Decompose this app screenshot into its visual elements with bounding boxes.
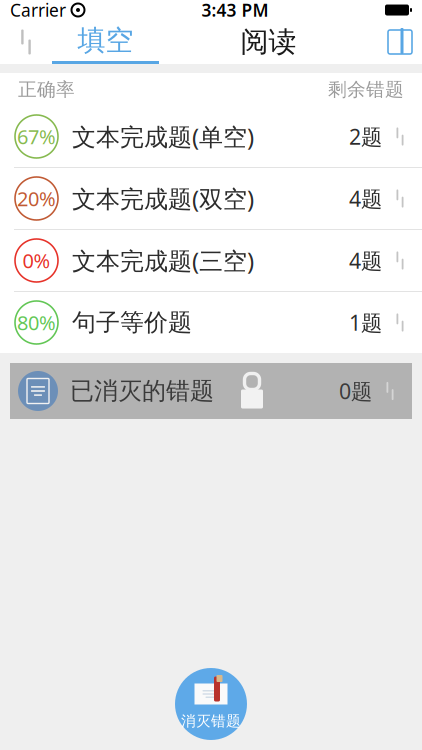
staticText: 文本完成题(双空) bbox=[72, 183, 254, 214]
button[interactable]: 20% bbox=[0, 168, 422, 229]
button[interactable]: Compose bbox=[378, 20, 422, 64]
staticText: Carrier bbox=[10, 0, 66, 21]
staticText: 1题 bbox=[349, 308, 382, 337]
staticText: 20% bbox=[17, 185, 56, 212]
button[interactable]: 已消灭的错题 bbox=[10, 363, 412, 419]
staticText: 4题 bbox=[349, 246, 382, 275]
staticText: 消灭错题 bbox=[181, 712, 241, 730]
button[interactable]: Back bbox=[0, 20, 52, 64]
button[interactable]: 阅读 bbox=[218, 20, 318, 64]
button[interactable]: 消灭错题 bbox=[175, 668, 247, 740]
staticText: 句子等价题 bbox=[72, 308, 192, 337]
staticText: 文本完成题(三空) bbox=[72, 245, 254, 276]
staticText: 填空 bbox=[77, 23, 133, 58]
staticText: 2题 bbox=[349, 122, 382, 151]
staticText: 剩余错题 bbox=[328, 78, 404, 101]
staticText: 0题 bbox=[339, 377, 372, 405]
staticText: 已消灭的错题 bbox=[70, 376, 214, 406]
button[interactable]: 80% bbox=[0, 292, 422, 353]
button[interactable]: 填空 bbox=[52, 20, 159, 64]
staticText: 正确率 bbox=[18, 78, 75, 101]
staticText: 67% bbox=[17, 123, 56, 150]
staticText: 80% bbox=[17, 309, 56, 336]
button[interactable]: 67% bbox=[0, 106, 422, 167]
staticText: 0% bbox=[22, 247, 50, 274]
button[interactable]: 0% bbox=[0, 230, 422, 291]
staticText: 阅读 bbox=[240, 25, 296, 59]
staticText: 文本完成题(单空) bbox=[72, 121, 254, 152]
staticText: 4题 bbox=[349, 184, 382, 213]
staticText: 3:43 PM bbox=[201, 0, 268, 21]
